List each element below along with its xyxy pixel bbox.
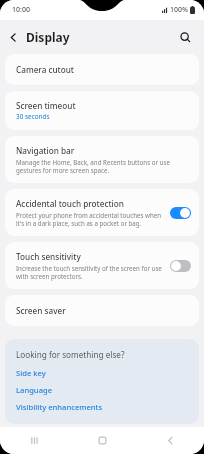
staticText: Touch sensitivity — [16, 251, 81, 262]
button[interactable]: Language — [16, 385, 188, 395]
button[interactable]: Screen timeout — [5, 91, 199, 130]
button[interactable]: Touch sensitivity — [5, 242, 199, 289]
button[interactable]: Camera cutout — [5, 54, 199, 85]
staticText: 30 seconds — [16, 112, 50, 121]
staticText: Increase the touch sensitivity of the sc… — [16, 264, 164, 280]
staticText: Navigation bar — [16, 145, 75, 156]
staticText: 10:00 — [12, 5, 30, 15]
button[interactable]: Side key — [16, 368, 188, 378]
staticText: Side key — [16, 368, 46, 378]
button[interactable]: Toggle on — [170, 207, 191, 219]
button[interactable]: Navigate up — [0, 24, 26, 50]
button[interactable]: Search — [172, 24, 198, 50]
staticText: Protect your phone from accidental touch… — [16, 211, 164, 227]
button[interactable]: Toggle off — [170, 260, 191, 272]
button[interactable]: Visibility enhancements — [16, 402, 188, 412]
staticText: Screen saver — [16, 305, 66, 316]
staticText: Language — [16, 385, 53, 395]
button[interactable]: Recents — [0, 427, 68, 454]
button[interactable]: Accidental touch protection — [5, 189, 199, 236]
button[interactable]: Home — [68, 427, 136, 454]
button[interactable]: Back — [136, 427, 204, 454]
button[interactable]: Screen saver — [5, 295, 199, 326]
staticText: Accidental touch protection — [16, 198, 124, 209]
staticText: Manage the Home, Back, and Recents butto… — [16, 158, 188, 174]
staticText: Looking for something else? — [16, 349, 125, 360]
staticText: Screen timeout — [16, 100, 76, 111]
staticText: 100% — [170, 5, 188, 15]
staticText: Display — [26, 29, 70, 45]
staticText: Visibility enhancements — [16, 402, 103, 412]
button[interactable]: Navigation bar — [5, 136, 199, 183]
staticText: Camera cutout — [16, 64, 75, 75]
